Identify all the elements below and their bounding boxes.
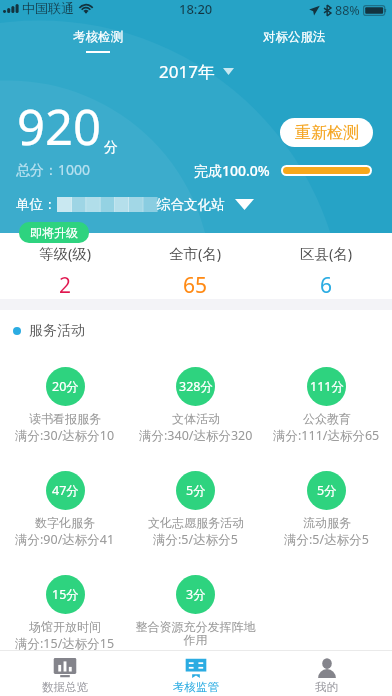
button[interactable]: 我的 — [261, 651, 392, 694]
button[interactable]: 5分 — [261, 456, 392, 548]
staticText: 20分 — [52, 378, 79, 395]
button[interactable]: 47分 — [0, 456, 130, 548]
staticText: 分 — [104, 139, 118, 157]
button[interactable]: 数据总览 — [0, 651, 130, 694]
staticText: 对标公服法 — [263, 29, 326, 45]
staticText: 111分 — [310, 378, 344, 395]
button[interactable]: 2017年 — [159, 60, 234, 83]
staticText: 5分 — [317, 482, 337, 499]
staticText: 数据总览 — [42, 680, 88, 694]
staticText: 单位： — [16, 196, 57, 213]
other: 数据总览 — [53, 657, 77, 679]
staticText: 读书看报服务 — [29, 411, 101, 426]
staticText: 即将升级 — [30, 225, 78, 240]
staticText: 满分:111/达标分65 — [273, 427, 380, 444]
staticText: 满分:90/达标分41 — [15, 531, 115, 548]
staticText: 中国联通 — [22, 0, 74, 16]
button[interactable]: 3分 — [130, 560, 261, 649]
staticText: 88% — [335, 2, 360, 19]
staticText: 我的 — [315, 680, 338, 694]
staticText: 重新检测 — [295, 123, 359, 143]
button[interactable]: 等级(级) — [0, 233, 130, 299]
staticText: 15分 — [52, 586, 79, 603]
button[interactable]: 5分 — [130, 456, 261, 548]
button[interactable]: 考核监管 — [130, 651, 261, 694]
button[interactable]: 328分 — [130, 352, 261, 444]
button[interactable]: 20分 — [0, 352, 130, 444]
staticText: 完成100.0% — [194, 161, 270, 180]
staticText: 总分：1000 — [16, 160, 91, 179]
staticText: 满分:340/达标分320 — [139, 427, 253, 444]
staticText: 满分:15/达标分15 — [15, 635, 115, 652]
staticText: 公众教育 — [303, 411, 351, 426]
staticText: 场馆开放时间 — [29, 619, 101, 634]
staticText: 满分:5/达标分5 — [284, 531, 369, 548]
staticText: 满分:5/达标分5 — [153, 531, 238, 548]
staticText: 全市(名) — [169, 243, 222, 263]
staticText: 65 — [183, 271, 208, 299]
staticText: 综合文化站 — [157, 196, 225, 213]
staticText: 3分 — [186, 586, 206, 603]
button[interactable]: 区县(名) — [261, 233, 392, 299]
staticText: 满分:30/达标分10 — [15, 427, 115, 444]
staticText: 服务活动 — [29, 322, 85, 340]
staticText: 18:20 — [179, 0, 213, 18]
staticText: 2 — [59, 271, 72, 299]
staticText: 考核检测 — [73, 29, 123, 45]
button[interactable]: 对标公服法 — [196, 22, 392, 45]
staticText: 文体活动 — [172, 411, 220, 426]
other: 考核监管 — [184, 657, 208, 679]
staticText: 2017年 — [159, 60, 215, 83]
staticText: 整合资源充分发挥阵地作用 — [132, 619, 259, 648]
staticText: 920 — [17, 93, 102, 160]
other: 我的 — [315, 657, 339, 679]
button[interactable]: 服务活动 — [13, 310, 392, 352]
staticText: 328分 — [179, 378, 213, 395]
button[interactable]: 全市(名) — [130, 233, 261, 299]
staticText: 等级(级) — [39, 243, 92, 263]
button[interactable]: 单位： — [16, 196, 254, 213]
staticText: 47分 — [52, 482, 79, 499]
button[interactable]: 111分 — [261, 352, 392, 444]
staticText: 考核监管 — [173, 680, 219, 694]
staticText: 6 — [320, 271, 333, 299]
staticText: 区县(名) — [300, 243, 353, 263]
button[interactable]: 考核检测 — [0, 22, 196, 53]
staticText: 数字化服务 — [35, 515, 95, 530]
staticText: 文化志愿服务活动 — [148, 515, 244, 530]
staticText: 5分 — [186, 482, 206, 499]
staticText: 流动服务 — [303, 515, 351, 530]
button[interactable]: 重新检测 — [280, 118, 373, 147]
button[interactable]: 15分 — [0, 560, 130, 652]
button[interactable]: 即将升级 — [19, 222, 89, 243]
